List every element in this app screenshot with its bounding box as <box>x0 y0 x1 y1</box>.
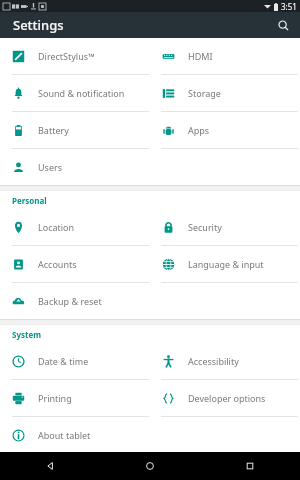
button[interactable]: Printing <box>0 380 150 416</box>
button[interactable]: DirectStylus™ <box>0 38 150 74</box>
staticText: Security <box>188 221 222 233</box>
button[interactable]: Accounts <box>0 246 150 282</box>
staticText: HDMI <box>188 50 213 62</box>
button[interactable]: Developer options <box>150 380 300 416</box>
staticText: 3:51 <box>281 1 297 12</box>
button[interactable]: About tablet <box>0 417 150 452</box>
staticText: Backup & reset <box>38 295 102 307</box>
staticText: Personal <box>12 195 47 206</box>
staticText: Developer options <box>188 392 266 404</box>
button[interactable]: Storage <box>150 75 300 111</box>
staticText: Settings <box>13 16 64 34</box>
staticText: About tablet <box>38 429 91 441</box>
staticText: Battery <box>38 124 69 136</box>
button[interactable]: Sound & notification <box>0 75 150 111</box>
button[interactable]: Search <box>272 14 294 36</box>
button[interactable]: Recent apps <box>200 452 300 480</box>
button[interactable]: Date & time <box>0 343 150 379</box>
button[interactable]: Accessibility <box>150 343 300 379</box>
staticText: Accounts <box>38 258 77 270</box>
button[interactable]: Battery <box>0 112 150 148</box>
staticText: Storage <box>188 87 221 99</box>
button[interactable]: Users <box>0 149 150 185</box>
button[interactable]: Language & input <box>150 246 300 282</box>
staticText: Printing <box>38 392 72 404</box>
staticText: System <box>12 329 42 340</box>
staticText: Language & input <box>188 258 264 270</box>
staticText: DirectStylus™ <box>38 50 96 62</box>
staticText: Date & time <box>38 355 89 367</box>
staticText: Accessibility <box>188 355 239 367</box>
button[interactable]: Location <box>0 209 150 245</box>
staticText: Sound & notification <box>38 87 125 99</box>
button[interactable]: Backup & reset <box>0 283 150 319</box>
staticText: Users <box>38 161 62 173</box>
button[interactable]: HDMI <box>150 38 300 74</box>
staticText: Apps <box>188 124 210 136</box>
button[interactable]: Home <box>100 452 200 480</box>
staticText: Location <box>38 221 75 233</box>
button[interactable]: Apps <box>150 112 300 148</box>
button[interactable]: Back <box>0 452 100 480</box>
button[interactable]: Security <box>150 209 300 245</box>
